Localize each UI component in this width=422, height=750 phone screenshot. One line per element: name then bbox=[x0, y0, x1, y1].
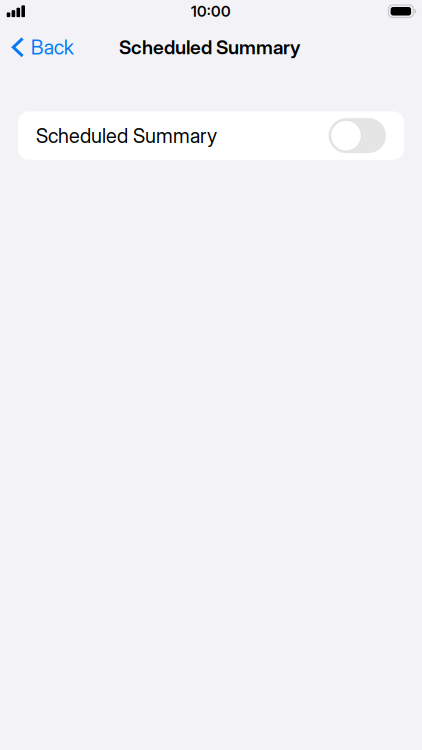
staticText: Scheduled Summary bbox=[36, 124, 217, 148]
staticText: 10:00 bbox=[191, 2, 231, 20]
button[interactable]: Scheduled Summary bbox=[329, 118, 386, 153]
staticText: Scheduled Summary bbox=[119, 36, 300, 59]
staticText: Back bbox=[31, 35, 74, 59]
button[interactable]: Back bbox=[0, 22, 92, 72]
button[interactable]: Scheduled Summary bbox=[18, 111, 404, 160]
